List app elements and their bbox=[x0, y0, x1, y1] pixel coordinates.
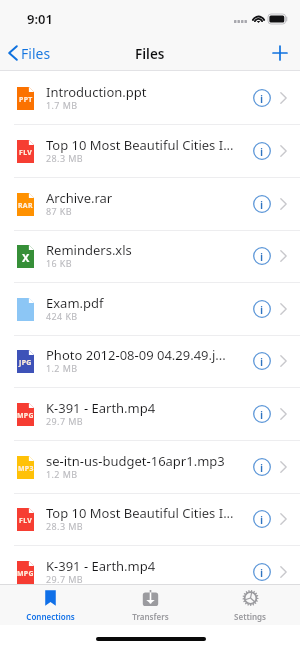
button[interactable]: FLV bbox=[0, 125, 300, 178]
staticText: 1.2 MB bbox=[46, 362, 78, 374]
staticText: Settings bbox=[234, 611, 266, 622]
button[interactable]: Info bbox=[250, 402, 274, 426]
staticText: Photo 2012-08-09 04.29.49.j... bbox=[46, 346, 226, 364]
button[interactable]: Info bbox=[250, 297, 274, 321]
button[interactable]: Info bbox=[250, 86, 274, 110]
staticText: Files bbox=[21, 44, 51, 63]
staticText: i bbox=[260, 512, 264, 527]
staticText: Archive.rar bbox=[46, 189, 113, 207]
staticText: RAR bbox=[18, 201, 33, 210]
button[interactable]: Info bbox=[250, 455, 274, 479]
button[interactable]: Info bbox=[250, 192, 274, 216]
staticText: Top 10 Most Beautiful Cities I... bbox=[46, 136, 234, 154]
button[interactable]: Info bbox=[250, 139, 274, 163]
button[interactable]: Exam.pdf bbox=[0, 283, 300, 336]
button[interactable]: Settings bbox=[200, 584, 300, 625]
button[interactable]: Info bbox=[250, 349, 274, 373]
staticText: se-itn-us-budget-16apr1.mp3 bbox=[46, 452, 225, 470]
staticText: 424 KB bbox=[46, 310, 78, 322]
staticText: 29.7 MB bbox=[46, 415, 84, 427]
button[interactable]: Add bbox=[266, 42, 294, 64]
staticText: 1.7 MB bbox=[46, 99, 78, 111]
staticText: MPG bbox=[17, 569, 34, 578]
staticText: i bbox=[260, 144, 264, 159]
button[interactable]: MPG bbox=[0, 388, 300, 441]
button[interactable]: Files bbox=[0, 42, 57, 64]
staticText: K-391 - Earth.mp4 bbox=[46, 557, 156, 575]
staticText: JPG bbox=[19, 358, 32, 367]
button[interactable]: JPG bbox=[0, 335, 300, 388]
staticText: MP3 bbox=[18, 464, 34, 473]
staticText: X bbox=[22, 250, 30, 265]
staticText: 28.3 MB bbox=[46, 520, 84, 532]
button[interactable]: Info bbox=[250, 560, 274, 584]
staticText: i bbox=[260, 302, 264, 317]
staticText: Exam.pdf bbox=[46, 294, 104, 312]
staticText: i bbox=[260, 249, 264, 264]
staticText: 9:01 bbox=[27, 10, 53, 28]
staticText: 87 KB bbox=[46, 205, 73, 217]
staticText: 28.3 MB bbox=[46, 152, 84, 164]
button[interactable]: MPG bbox=[0, 546, 300, 584]
staticText: FLV bbox=[19, 148, 33, 157]
staticText: MPG bbox=[17, 411, 34, 420]
button[interactable]: Info bbox=[250, 244, 274, 268]
staticText: Reminders.xls bbox=[46, 241, 132, 259]
staticText: Connections bbox=[26, 611, 75, 622]
button[interactable]: Transfers bbox=[100, 584, 200, 625]
staticText: i bbox=[260, 407, 264, 422]
button[interactable]: X bbox=[0, 230, 300, 283]
button[interactable]: Connections bbox=[0, 584, 100, 625]
button[interactable]: RAR bbox=[0, 178, 300, 231]
staticText: i bbox=[260, 354, 264, 369]
staticText: i bbox=[260, 91, 264, 106]
staticText: i bbox=[260, 197, 264, 212]
staticText: PPT bbox=[19, 95, 33, 104]
staticText: Top 10 Most Beautiful Cities I... bbox=[46, 504, 234, 522]
staticText: Introduction.ppt bbox=[46, 83, 147, 101]
button[interactable]: FLV bbox=[0, 493, 300, 546]
staticText: Transfers bbox=[132, 611, 169, 622]
staticText: i bbox=[260, 460, 264, 475]
button[interactable]: Info bbox=[250, 507, 274, 531]
staticText: 29.7 MB bbox=[46, 573, 84, 584]
staticText: K-391 - Earth.mp4 bbox=[46, 399, 156, 417]
staticText: FLV bbox=[19, 516, 33, 525]
button[interactable]: MP3 bbox=[0, 441, 300, 494]
button[interactable]: PPT bbox=[0, 72, 300, 125]
staticText: i bbox=[260, 565, 264, 580]
staticText: 1.2 MB bbox=[46, 468, 78, 480]
staticText: Files bbox=[135, 45, 165, 63]
staticText: 16 KB bbox=[46, 257, 73, 269]
